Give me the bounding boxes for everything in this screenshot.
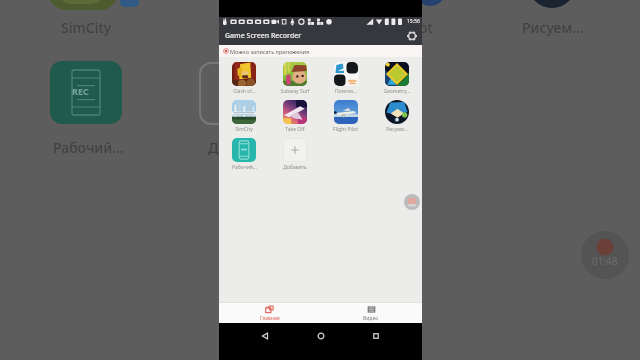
button[interactable]: Subway Surf [269, 59, 320, 97]
staticText: Рисуем... [386, 126, 408, 133]
staticText: SimCity [61, 18, 112, 37]
staticText: Рисуем... [522, 18, 584, 37]
staticText: Видео [363, 315, 379, 322]
button[interactable]: Рабочий... [219, 135, 269, 173]
button[interactable]: Back [256, 327, 274, 345]
staticText: Главная [260, 315, 280, 322]
staticText: Clash of... [233, 88, 256, 95]
staticText: Д [208, 138, 219, 157]
staticText: Subway Surf [280, 88, 310, 95]
staticText: Плитки... [335, 88, 357, 95]
button[interactable]: Recents [367, 327, 385, 345]
button[interactable]: Home [312, 327, 330, 345]
staticText: SimCity [235, 126, 253, 133]
button[interactable]: Плитки... [320, 59, 371, 97]
staticText: 15:56 [407, 18, 420, 25]
staticText: REC [72, 85, 89, 97]
staticText: Рабочий... [232, 164, 257, 171]
button[interactable]: Видео [320, 303, 422, 323]
staticText: Добавить [283, 164, 307, 171]
button[interactable]: Flight Pilot [320, 97, 371, 135]
staticText: Geometry... [383, 88, 411, 95]
staticText: ot [419, 18, 433, 37]
staticText: 01:48 [592, 254, 618, 268]
button[interactable]: Главная [219, 303, 320, 323]
button[interactable]: Рисуем... [371, 97, 422, 135]
staticText: Take Off [285, 126, 305, 133]
staticText: Flight Pilot [333, 126, 358, 133]
button[interactable]: SimCity [219, 97, 269, 135]
button[interactable]: Recorder bubble [404, 194, 420, 210]
button[interactable]: Settings [404, 28, 419, 43]
button[interactable]: Добавить [269, 135, 320, 173]
button[interactable]: Take Off [269, 97, 320, 135]
staticText: Можно записать приложения [230, 48, 310, 55]
button[interactable]: Clash of... [219, 59, 269, 97]
staticText: Рабочий... [53, 138, 124, 157]
button[interactable]: Geometry... [371, 59, 422, 97]
staticText: Game Screen Recorder [225, 31, 302, 41]
